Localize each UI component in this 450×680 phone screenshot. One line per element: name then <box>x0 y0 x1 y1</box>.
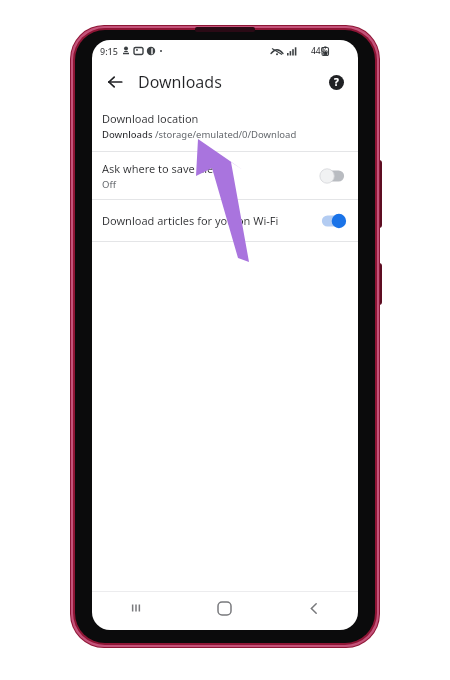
staticText: ? <box>334 75 339 89</box>
staticText: /storage/emulated/0/Download <box>155 128 297 141</box>
staticText: 44% <box>311 45 328 57</box>
staticText: Ask where to save files <box>102 161 219 176</box>
staticText: Downloads <box>138 71 222 93</box>
staticText: Download location <box>102 111 199 126</box>
button[interactable]: Back <box>269 592 358 624</box>
button[interactable]: Download location <box>92 102 358 151</box>
staticText: Download articles for you on Wi-Fi <box>102 213 279 228</box>
button[interactable]: Home <box>180 592 269 624</box>
button[interactable]: Help <box>322 68 350 96</box>
staticText: Downloads <box>102 128 155 141</box>
staticText: 9:15 <box>100 45 118 57</box>
button[interactable]: Ask where to save files <box>92 152 358 199</box>
button[interactable]: On <box>318 211 348 231</box>
button[interactable]: Download articles for you on Wi-Fi <box>92 200 358 241</box>
staticText: Off <box>102 178 116 191</box>
button[interactable]: Recents <box>92 592 180 624</box>
button[interactable]: Off <box>318 166 348 186</box>
button[interactable]: Back <box>100 67 130 97</box>
